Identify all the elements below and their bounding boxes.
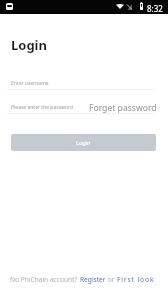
button[interactable]: Register	[78, 275, 106, 284]
staticText: 8:32	[147, 3, 163, 14]
button[interactable]: First look	[117, 275, 155, 284]
staticText: or	[106, 275, 117, 284]
staticText: No PhiChain account?	[10, 275, 78, 284]
button[interactable]: Login	[11, 134, 156, 151]
staticText: First look	[117, 275, 155, 284]
other: Wi-Fi connected	[116, 4, 124, 9]
staticText: Enter username	[11, 80, 49, 87]
button[interactable]: Forget password	[88, 99, 157, 113]
staticText: Login	[76, 139, 91, 146]
staticText: Login	[11, 36, 47, 54]
other: No mobile signal	[127, 4, 132, 10]
other: Battery	[140, 2, 143, 10]
button[interactable]: Enter username	[7, 74, 157, 90]
staticText: Forget password	[89, 102, 157, 114]
staticText: Please enter the password	[11, 104, 74, 111]
other: Screenshot notification	[6, 3, 13, 10]
staticText: Register	[80, 275, 106, 284]
button[interactable]: Please enter the password	[7, 99, 87, 113]
